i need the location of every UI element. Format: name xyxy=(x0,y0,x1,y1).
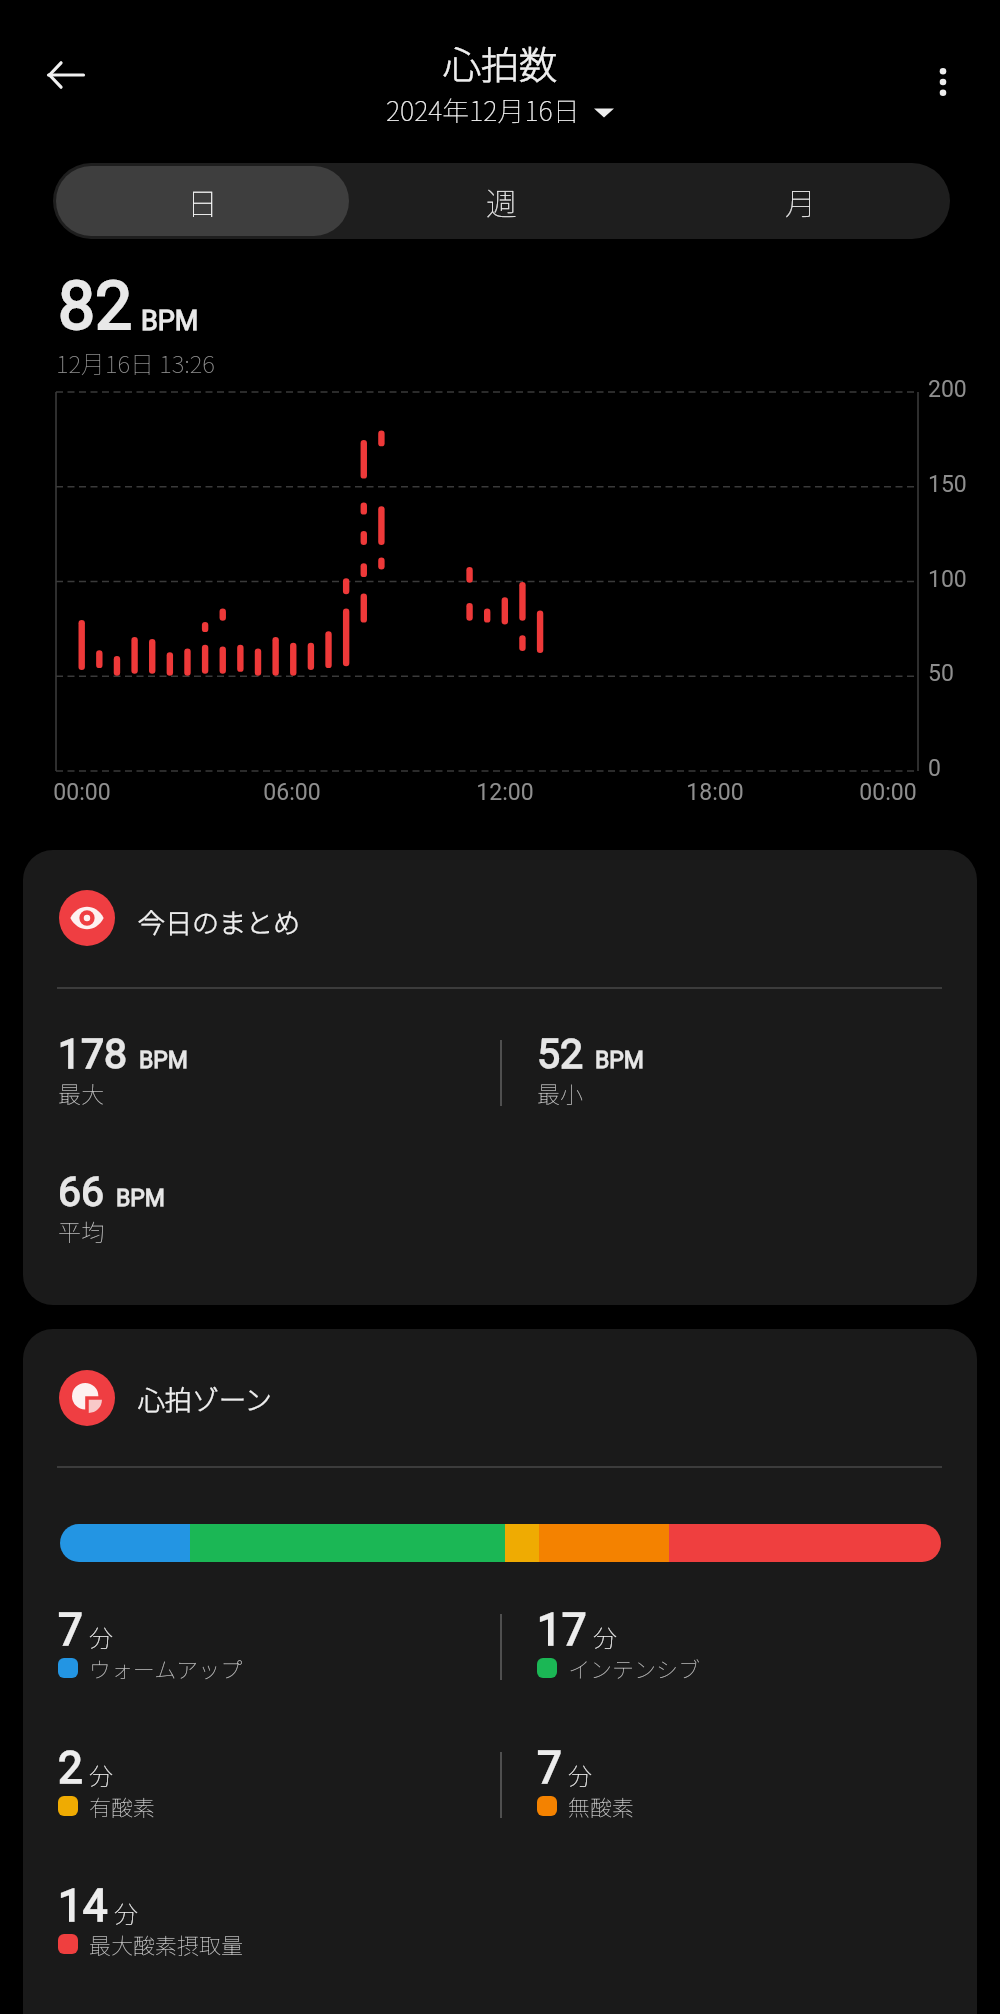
staticText: 今日のまとめ xyxy=(138,902,300,941)
staticText: BPM xyxy=(141,305,199,337)
staticText: 17 xyxy=(537,1604,587,1656)
staticText: 150 xyxy=(928,471,967,498)
staticText: 分 xyxy=(89,1619,113,1654)
staticText: BPM xyxy=(595,1047,644,1074)
staticText: BPM xyxy=(139,1047,188,1074)
staticText: 7 xyxy=(537,1742,562,1794)
staticText: 18:00 xyxy=(675,779,755,806)
staticText: 7 xyxy=(58,1604,83,1656)
staticText: 最小 xyxy=(537,1076,583,1109)
staticText: BPM xyxy=(116,1185,165,1212)
staticText: 50 xyxy=(928,660,954,687)
button[interactable]: 月 xyxy=(654,166,947,236)
staticText: 無酸素 xyxy=(568,1790,635,1822)
button[interactable]: 週 xyxy=(355,166,648,236)
staticText: 0 xyxy=(928,755,941,782)
staticText: 52 xyxy=(537,1030,584,1078)
button[interactable]: 日 xyxy=(56,166,349,236)
staticText: 14 xyxy=(58,1880,108,1932)
staticText: 00:00 xyxy=(42,779,122,806)
staticText: ウォームアップ xyxy=(89,1652,243,1684)
staticText: 分 xyxy=(593,1619,617,1654)
staticText: 2024年12月16日 xyxy=(386,90,580,129)
staticText: 100 xyxy=(928,566,967,593)
staticText: 00:00 xyxy=(848,779,928,806)
staticText: 心拍数 xyxy=(443,35,558,90)
staticText: 分 xyxy=(568,1757,592,1792)
staticText: 200 xyxy=(928,376,967,403)
staticText: 有酸素 xyxy=(89,1790,156,1822)
staticText: 66 xyxy=(58,1168,105,1216)
staticText: 心拍ゾーン xyxy=(138,1379,272,1418)
staticText: 日 xyxy=(187,179,218,224)
staticText: 最大酸素摂取量 xyxy=(89,1928,244,1960)
staticText: 12月16日 13:26 xyxy=(56,345,215,380)
staticText: 週 xyxy=(486,179,517,224)
button[interactable]: Back xyxy=(18,27,114,123)
staticText: 最大 xyxy=(58,1076,104,1109)
button[interactable]: 今日のまとめ xyxy=(23,850,977,1305)
staticText: 82 xyxy=(58,268,133,345)
staticText: 月 xyxy=(785,179,816,224)
staticText: 178 xyxy=(58,1030,128,1078)
button[interactable]: More options xyxy=(895,34,991,130)
button[interactable]: 心拍ゾーン xyxy=(23,1329,977,2014)
staticText: 分 xyxy=(89,1757,113,1792)
staticText: 平均 xyxy=(58,1214,104,1247)
staticText: 2 xyxy=(58,1742,83,1794)
staticText: インテンシブ xyxy=(568,1652,701,1684)
staticText: 06:00 xyxy=(252,779,332,806)
staticText: 12:00 xyxy=(465,779,545,806)
staticText: 分 xyxy=(114,1895,138,1930)
